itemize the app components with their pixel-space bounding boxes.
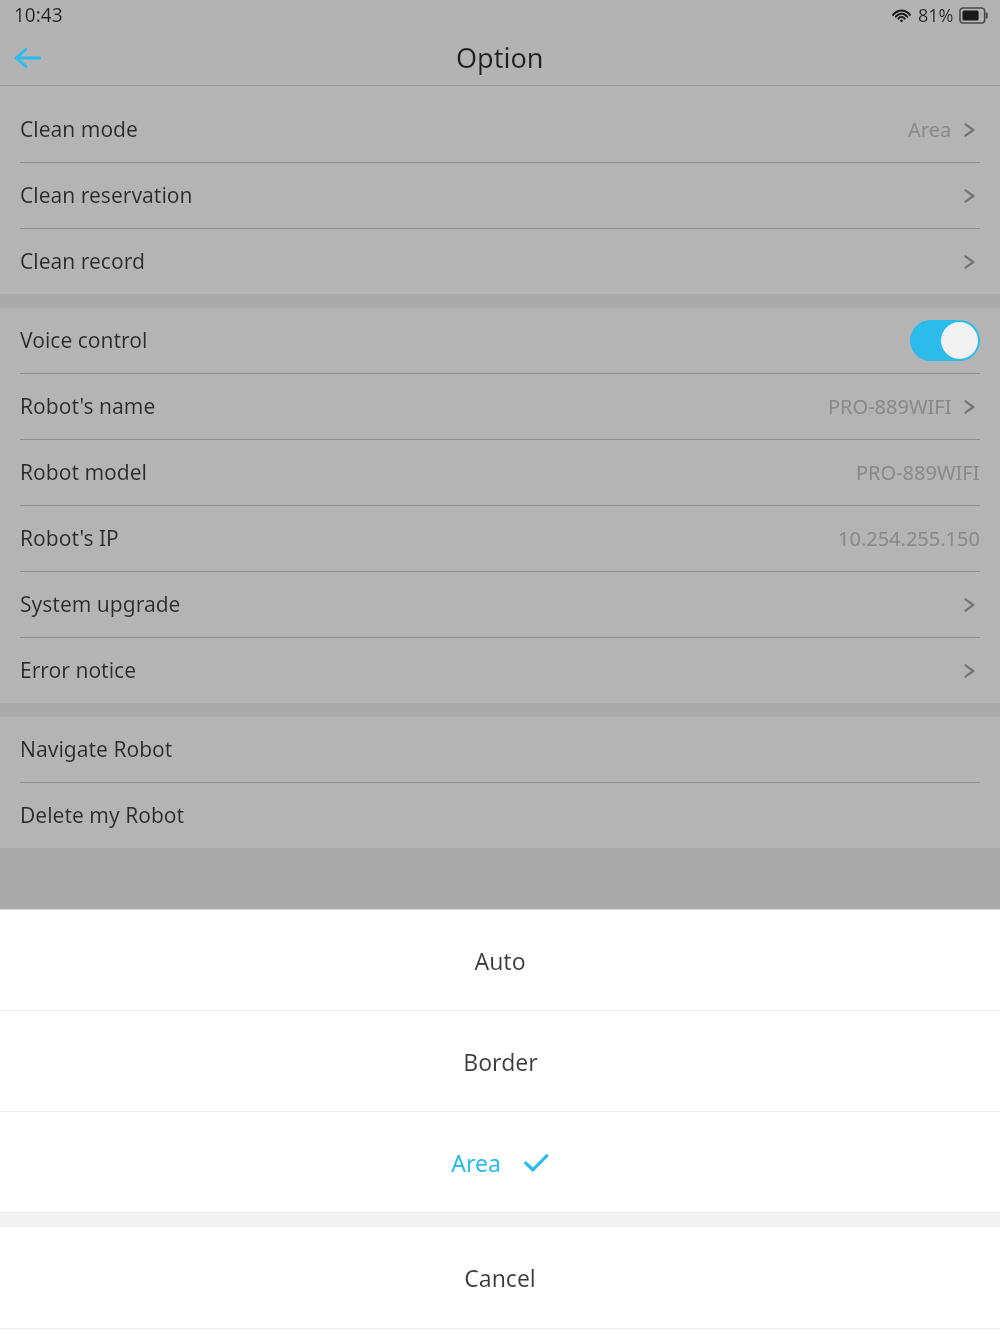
- button[interactable]: Navigate Robot: [0, 717, 1000, 783]
- staticText: Robot's IP: [20, 524, 119, 553]
- button[interactable]: Area: [0, 1112, 1000, 1212]
- button[interactable]: Delete my Robot: [0, 783, 1000, 848]
- button[interactable]: Robot model: [0, 440, 1000, 506]
- staticText: PRO-889WIFI: [828, 393, 952, 420]
- button[interactable]: Back: [0, 30, 56, 85]
- button[interactable]: Auto: [0, 910, 1000, 1010]
- staticText: Robot's name: [20, 392, 156, 421]
- staticText: Error notice: [20, 656, 137, 685]
- staticText: Area: [451, 1147, 501, 1178]
- staticText: Clean reservation: [20, 181, 193, 210]
- staticText: Option: [456, 39, 544, 76]
- staticText: System upgrade: [20, 590, 181, 619]
- button[interactable]: Voice control toggle: [910, 320, 980, 361]
- button[interactable]: Clean mode: [0, 97, 1000, 163]
- button[interactable]: Cancel: [0, 1227, 1000, 1328]
- staticText: 10:43: [14, 2, 63, 28]
- button[interactable]: Clean reservation: [0, 163, 1000, 229]
- staticText: Clean record: [20, 247, 145, 276]
- button[interactable]: Clean record: [0, 229, 1000, 294]
- button[interactable]: Robot's name: [0, 374, 1000, 440]
- button[interactable]: Border: [0, 1011, 1000, 1111]
- staticText: Delete my Robot: [20, 801, 185, 830]
- staticText: 10.254.255.150: [838, 525, 980, 552]
- staticText: Robot model: [20, 458, 147, 487]
- staticText: Cancel: [464, 1262, 536, 1293]
- button[interactable]: Error notice: [0, 638, 1000, 703]
- button[interactable]: Voice control: [0, 308, 1000, 374]
- staticText: 81%: [918, 3, 954, 28]
- staticText: Voice control: [20, 326, 148, 355]
- staticText: PRO-889WIFI: [856, 459, 980, 486]
- staticText: Border: [463, 1046, 538, 1077]
- button[interactable]: System upgrade: [0, 572, 1000, 638]
- button[interactable]: Robot's IP: [0, 506, 1000, 572]
- staticText: Auto: [474, 945, 526, 976]
- staticText: Area: [908, 116, 952, 143]
- staticText: Navigate Robot: [20, 735, 173, 764]
- staticText: Clean mode: [20, 115, 138, 144]
